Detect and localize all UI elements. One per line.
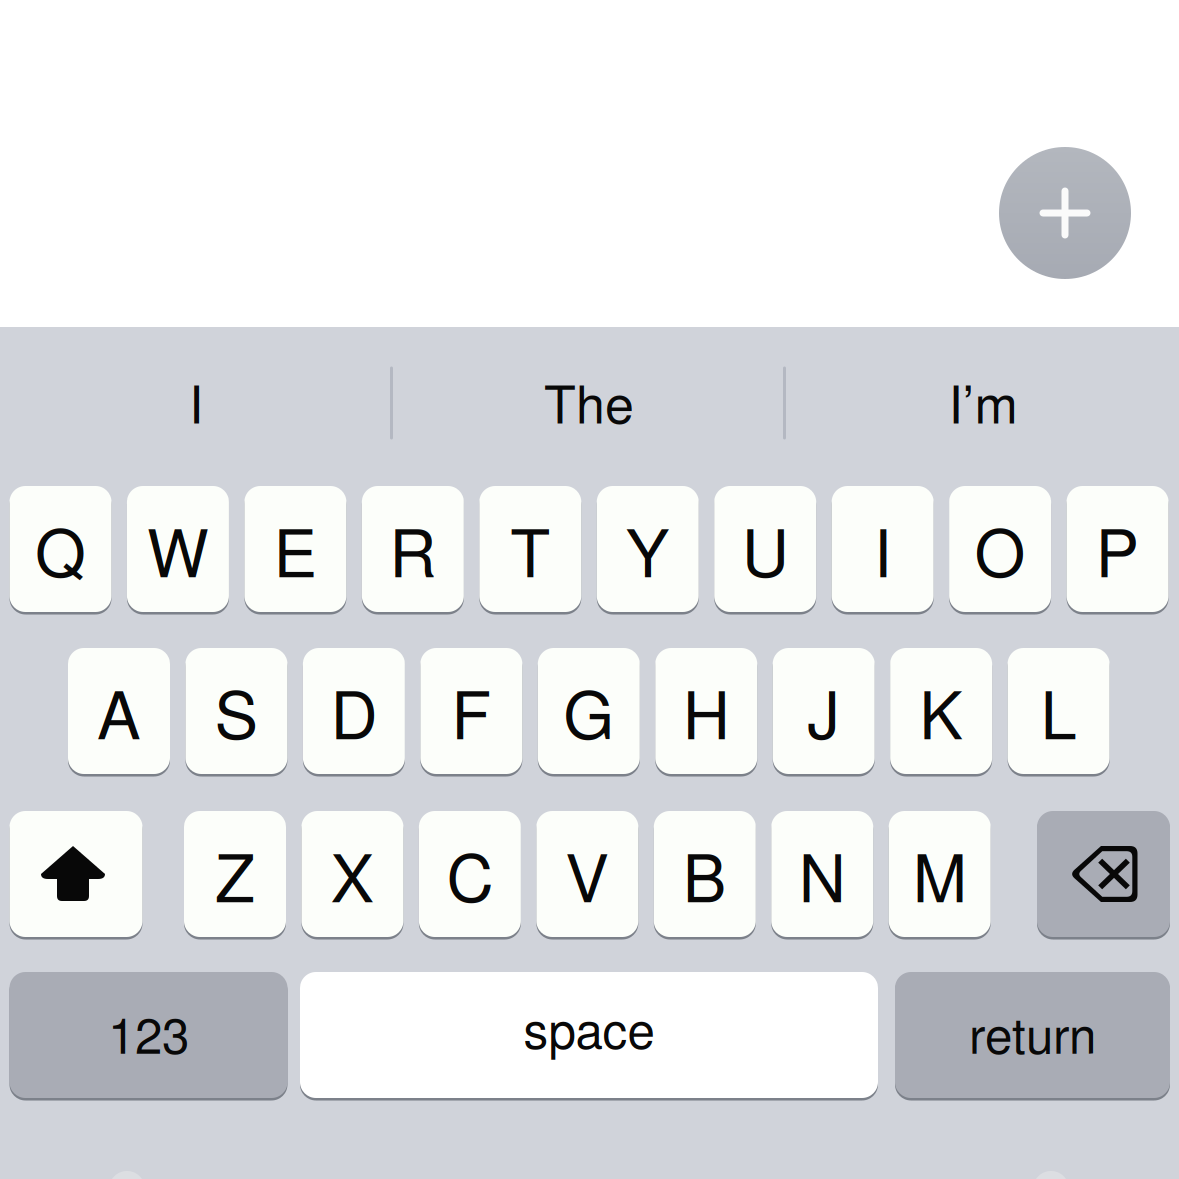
button[interactable]: I’m <box>787 342 1179 460</box>
staticText: X <box>330 827 374 921</box>
staticText: H <box>683 664 730 758</box>
button[interactable]: W <box>0 0 1179 1179</box>
button[interactable]: S <box>0 0 1179 1179</box>
staticText: W <box>147 502 209 596</box>
staticText: S <box>214 664 258 758</box>
staticText: O <box>975 502 1026 596</box>
staticText: The <box>544 364 634 438</box>
button[interactable]: X <box>0 0 1179 1179</box>
staticText: E <box>273 502 317 596</box>
staticText: I <box>189 364 203 438</box>
button[interactable]: Dictate <box>1033 1171 1069 1179</box>
button[interactable]: M <box>0 0 1179 1179</box>
staticText: L <box>1041 664 1077 758</box>
staticText: J <box>807 664 840 758</box>
button[interactable]: Add attachment <box>999 147 1131 279</box>
button[interactable]: O <box>0 0 1179 1179</box>
button[interactable]: L <box>0 0 1179 1179</box>
button[interactable]: P <box>0 0 1179 1179</box>
staticText: G <box>563 664 614 758</box>
staticText: K <box>919 664 963 758</box>
button[interactable]: Emoji <box>109 1171 145 1179</box>
button[interactable]: U <box>0 0 1179 1179</box>
button[interactable]: A <box>0 0 1179 1179</box>
button[interactable]: D <box>0 0 1179 1179</box>
staticText: 123 <box>108 997 189 1068</box>
button[interactable]: Y <box>0 0 1179 1179</box>
button[interactable]: T <box>0 0 1179 1179</box>
button[interactable]: R <box>0 0 1179 1179</box>
staticText: D <box>330 664 377 758</box>
button[interactable]: H <box>0 0 1179 1179</box>
button[interactable]: K <box>0 0 1179 1179</box>
staticText: N <box>799 827 846 921</box>
staticText: B <box>683 827 727 921</box>
button[interactable]: Delete <box>0 0 1179 1179</box>
staticText: R <box>389 502 436 596</box>
button[interactable]: Shift <box>0 0 1179 1179</box>
staticText: return <box>969 997 1096 1068</box>
button[interactable]: Q <box>0 0 1179 1179</box>
button[interactable]: I <box>0 0 1179 1179</box>
staticText: I’m <box>948 364 1017 438</box>
staticText: P <box>1095 502 1139 596</box>
button[interactable]: N <box>0 0 1179 1179</box>
staticText: A <box>97 664 141 758</box>
staticText: M <box>913 827 967 921</box>
button[interactable]: return <box>0 0 1179 1179</box>
button[interactable]: The <box>394 342 784 460</box>
staticText: U <box>742 502 789 596</box>
staticText: Q <box>35 502 86 596</box>
button[interactable]: C <box>0 0 1179 1179</box>
button[interactable]: 123 <box>0 0 1179 1179</box>
staticText: space <box>523 992 654 1063</box>
staticText: Y <box>626 502 670 596</box>
staticText: I <box>874 502 892 596</box>
button[interactable]: I <box>0 342 392 460</box>
button[interactable]: E <box>0 0 1179 1179</box>
staticText: F <box>451 664 491 758</box>
staticText: V <box>565 827 609 921</box>
button[interactable]: space <box>0 0 1179 1179</box>
staticText: T <box>510 502 550 596</box>
button[interactable]: Z <box>0 0 1179 1179</box>
button[interactable]: F <box>0 0 1179 1179</box>
button[interactable]: G <box>0 0 1179 1179</box>
button[interactable]: B <box>0 0 1179 1179</box>
button[interactable]: J <box>0 0 1179 1179</box>
staticText: C <box>446 827 493 921</box>
button[interactable]: V <box>0 0 1179 1179</box>
staticText: Z <box>215 827 255 921</box>
